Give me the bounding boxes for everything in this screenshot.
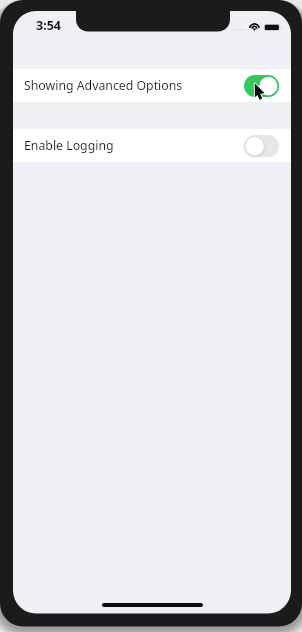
staticText: Enable Logging	[24, 137, 114, 154]
staticText: 3:54	[36, 17, 61, 34]
button[interactable]: Switch off	[244, 135, 279, 157]
button[interactable]: Switch on	[244, 75, 279, 97]
button[interactable]: Showing Advanced Options	[13, 69, 291, 102]
staticText: Showing Advanced Options	[24, 77, 183, 94]
button[interactable]: Enable Logging	[13, 129, 291, 162]
